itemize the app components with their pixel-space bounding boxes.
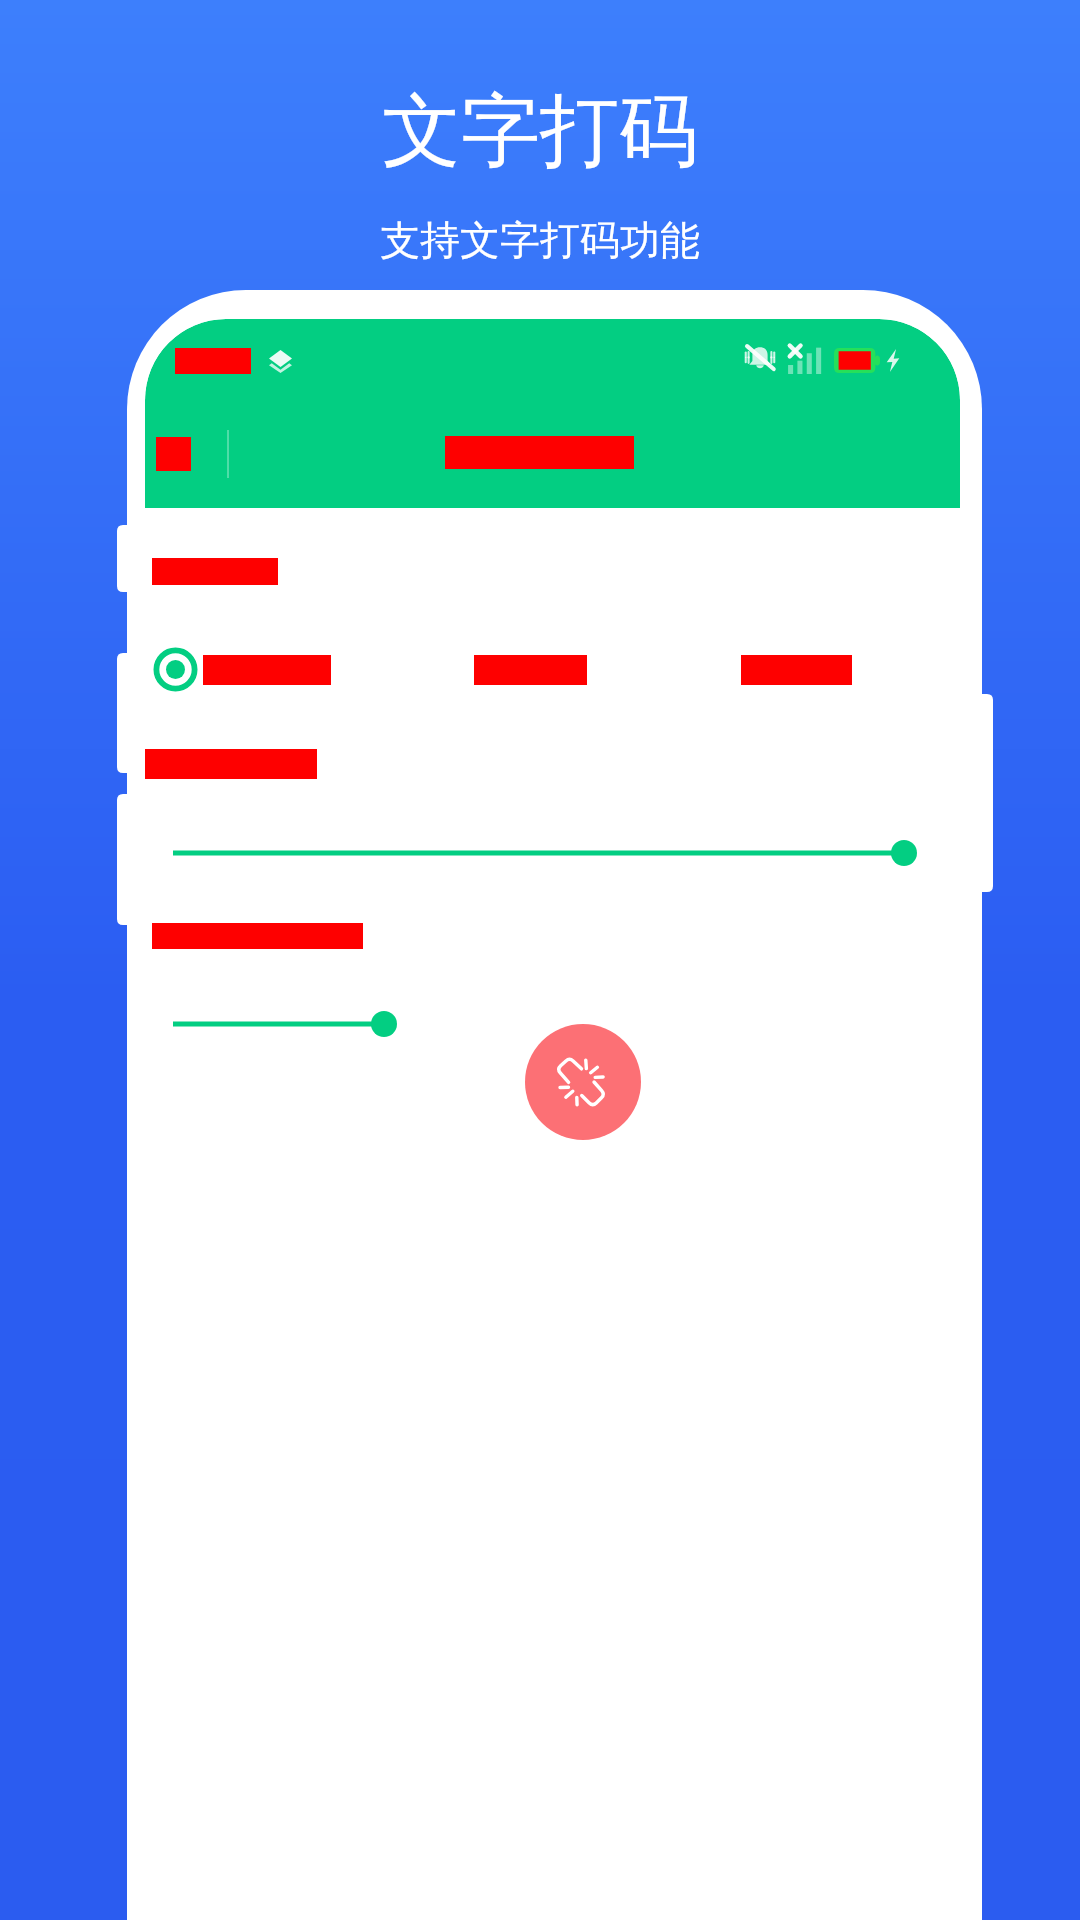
button[interactable]: Mosaic [525, 1024, 641, 1140]
button[interactable]: Select mode [153, 647, 198, 692]
staticText: 文字打码 [382, 82, 698, 182]
staticText: 支持文字打码功能 [380, 215, 700, 265]
